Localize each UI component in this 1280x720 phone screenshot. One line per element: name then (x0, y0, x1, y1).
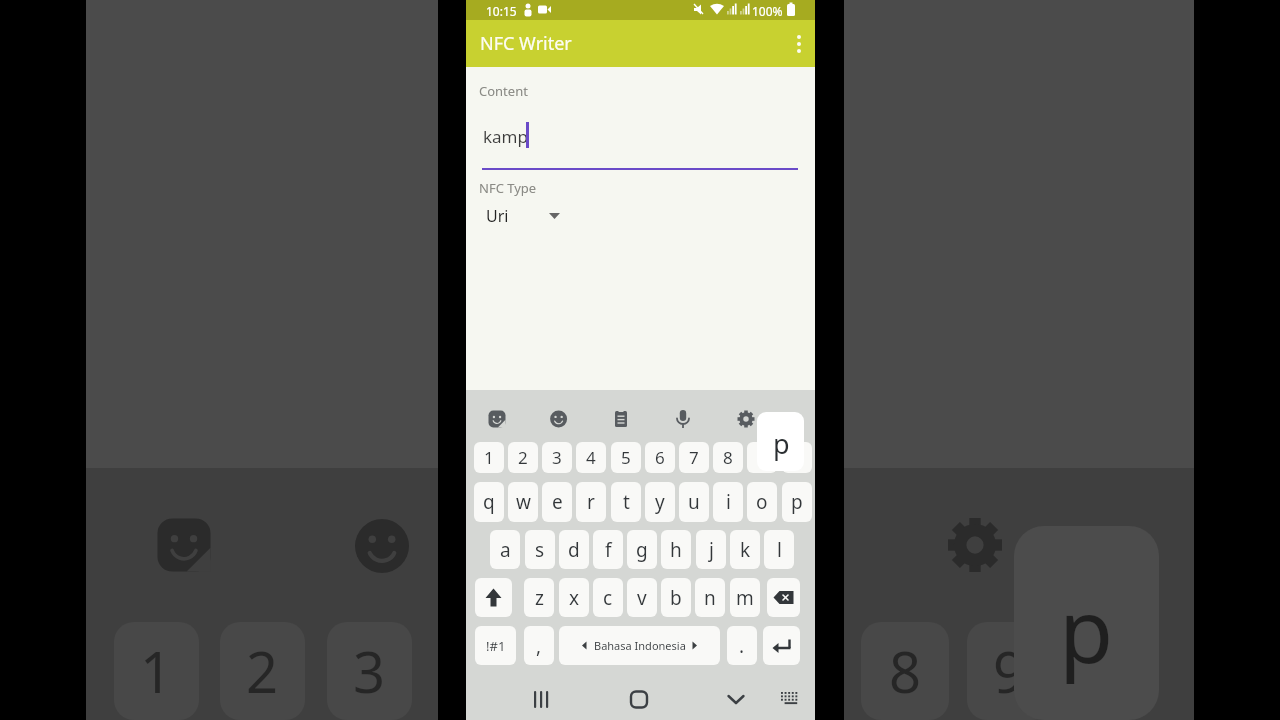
button[interactable]: r (576, 482, 606, 522)
button[interactable]: v (627, 578, 657, 617)
button[interactable]: s (525, 530, 555, 569)
button[interactable]: !#1 (475, 626, 516, 665)
staticText: e (552, 489, 563, 515)
staticText: q (483, 489, 495, 515)
staticText: 1 (140, 633, 173, 709)
staticText: v (637, 585, 647, 611)
button[interactable]: k (730, 530, 760, 569)
staticText: n (704, 585, 716, 611)
staticText: 4 (586, 446, 596, 469)
button[interactable]: p (782, 482, 812, 522)
button[interactable]: 8 (713, 442, 743, 473)
button[interactable] (616, 678, 662, 720)
button[interactable]: d (559, 530, 589, 569)
button[interactable]: 0 (782, 442, 812, 473)
staticText: p (773, 425, 790, 462)
button[interactable] (767, 578, 800, 617)
staticText: u (688, 489, 700, 515)
staticText: h (670, 537, 682, 563)
button[interactable]: j (696, 530, 726, 569)
staticText: m (736, 585, 754, 611)
staticText: o (756, 489, 768, 515)
staticText: 8 (889, 633, 922, 709)
button[interactable]: z (524, 578, 554, 617)
button[interactable] (713, 678, 759, 720)
button[interactable] (771, 678, 811, 720)
button[interactable]: 9 (747, 442, 777, 473)
button[interactable]: g (627, 530, 657, 569)
button[interactable]: a (490, 530, 520, 569)
staticText: 9 (993, 633, 1026, 709)
button[interactable]: i (713, 482, 743, 522)
staticText: z (535, 585, 544, 611)
button[interactable]: . (727, 626, 757, 665)
button[interactable] (475, 578, 512, 617)
button[interactable] (763, 626, 800, 665)
staticText: f (605, 537, 612, 563)
staticText: Bahasa Indonesia (594, 638, 686, 653)
staticText: t (623, 489, 630, 515)
button[interactable]: 5 (611, 442, 641, 473)
staticText: 3 (353, 633, 386, 709)
button[interactable]: t (611, 482, 641, 522)
staticText: 7 (689, 446, 699, 469)
staticText: Uri (486, 205, 509, 227)
staticText: !#1 (486, 637, 506, 655)
button[interactable]: q (474, 482, 504, 522)
staticText: w (516, 489, 531, 515)
staticText: p (1059, 569, 1114, 689)
staticText: 100% (752, 3, 783, 19)
button[interactable]: 6 (645, 442, 675, 473)
button[interactable]: Bahasa Indonesia (559, 626, 720, 665)
button[interactable]: 1 (474, 442, 504, 473)
staticText: 3 (552, 446, 562, 469)
button[interactable]: o (747, 482, 777, 522)
button[interactable]: 3 (542, 442, 572, 473)
button[interactable]: , (524, 626, 554, 665)
button[interactable]: w (508, 482, 538, 522)
button[interactable]: e (542, 482, 572, 522)
staticText: kamp (483, 125, 528, 148)
staticText: 2 (246, 633, 279, 709)
button[interactable]: x (559, 578, 589, 617)
staticText: . (739, 633, 745, 659)
button[interactable]: u (679, 482, 709, 522)
staticText: k (740, 537, 751, 563)
staticText: j (709, 537, 714, 563)
staticText: x (569, 585, 580, 611)
staticText: c (603, 585, 613, 611)
button[interactable]: m (730, 578, 760, 617)
button[interactable]: h (661, 530, 691, 569)
staticText: 2 (518, 446, 528, 469)
button[interactable]: l (764, 530, 794, 569)
button[interactable]: Uri (482, 201, 572, 229)
staticText: 10:15 (486, 3, 517, 19)
staticText: Content (479, 82, 528, 100)
button[interactable]: 4 (576, 442, 606, 473)
staticText: b (670, 585, 682, 611)
staticText: 5 (621, 446, 631, 469)
staticText: s (535, 537, 545, 563)
button[interactable]: 2 (508, 442, 538, 473)
button[interactable]: NFC Writer (466, 20, 815, 67)
button[interactable]: c (593, 578, 623, 617)
staticText: 6 (655, 446, 665, 469)
staticText: d (568, 537, 580, 563)
staticText: g (636, 537, 648, 563)
button[interactable]: b (661, 578, 691, 617)
staticText: , (536, 633, 542, 659)
staticText: i (726, 489, 731, 515)
staticText: a (500, 537, 511, 563)
button[interactable]: 7 (679, 442, 709, 473)
staticText: l (777, 537, 782, 563)
button[interactable]: n (695, 578, 725, 617)
button[interactable] (785, 20, 815, 67)
button[interactable]: f (593, 530, 623, 569)
staticText: 1 (484, 446, 494, 469)
button[interactable] (518, 678, 564, 720)
staticText: NFC Writer (480, 31, 572, 56)
button[interactable]: y (645, 482, 675, 522)
